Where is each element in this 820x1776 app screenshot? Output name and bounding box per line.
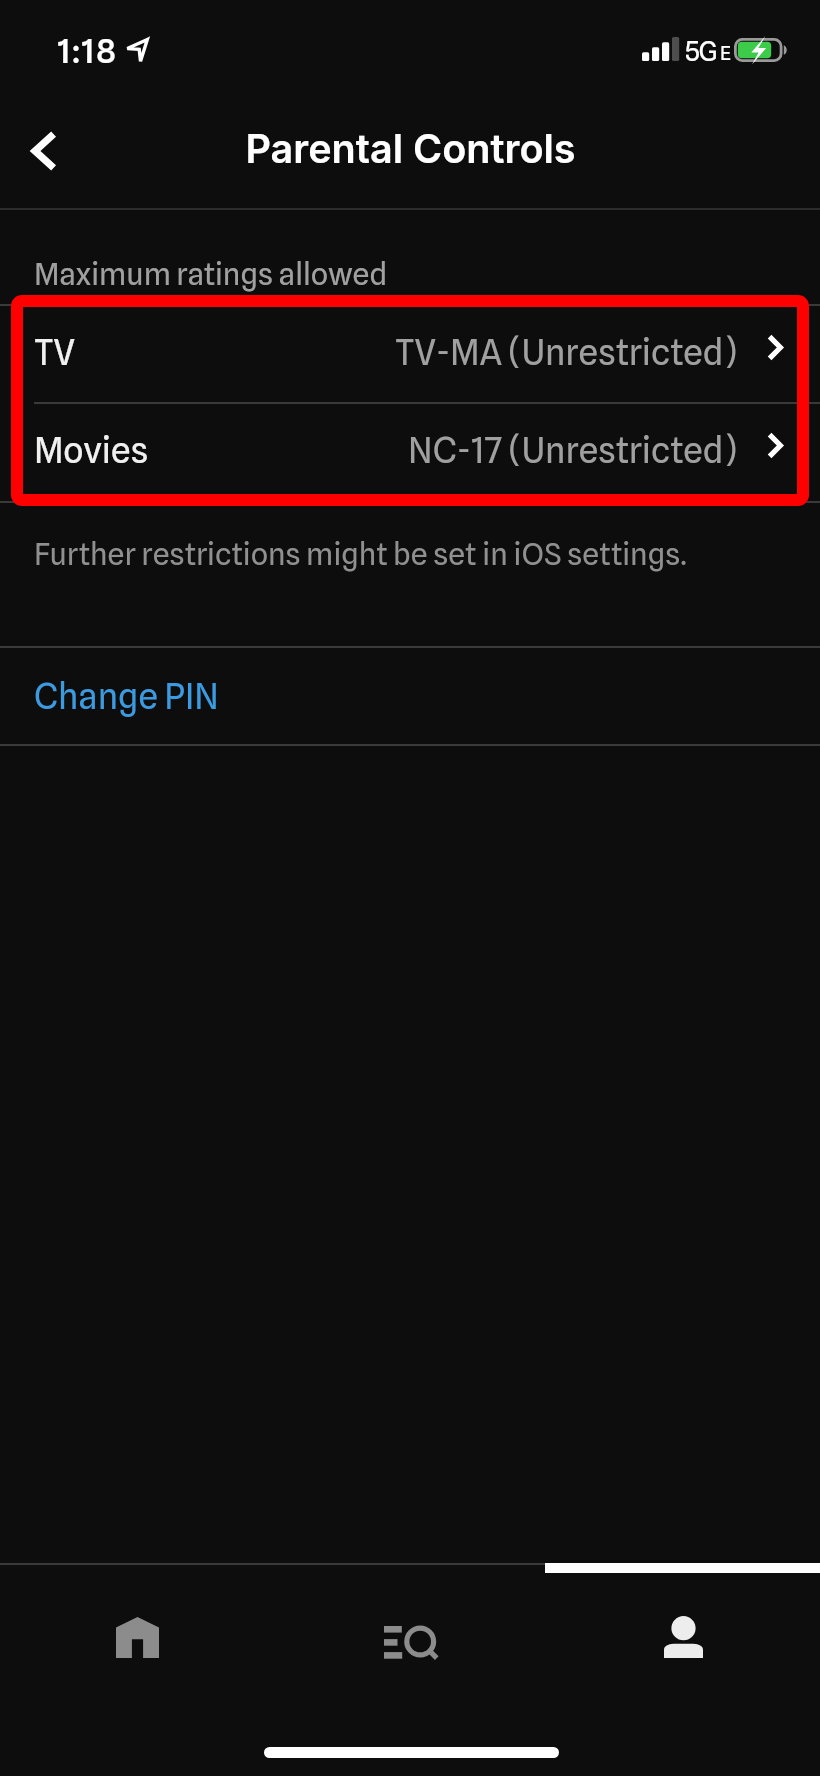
staticText: Parental Controls [245, 125, 576, 173]
staticText: 1:18 [57, 31, 118, 71]
button[interactable]: TV [0, 305, 820, 402]
staticText: TV-MA (Unrestricted) [395, 331, 737, 373]
button[interactable]: Back [13, 120, 75, 182]
button[interactable]: Home [0, 1577, 274, 1697]
staticText: Further restrictions might be set in iOS… [34, 536, 687, 572]
button[interactable]: Profile [547, 1577, 820, 1697]
staticText: NC-17 (Unrestricted) [408, 429, 737, 471]
staticText: Change PIN [34, 675, 219, 717]
staticText: E [720, 42, 731, 65]
staticText: 5G [685, 35, 717, 67]
staticText: Movies [34, 429, 149, 471]
button[interactable]: Browse [274, 1577, 547, 1697]
button[interactable]: Change PIN [0, 647, 820, 744]
staticText: Maximum ratings allowed [34, 256, 388, 292]
button[interactable]: Movies [0, 403, 820, 500]
staticText: TV [34, 331, 75, 373]
